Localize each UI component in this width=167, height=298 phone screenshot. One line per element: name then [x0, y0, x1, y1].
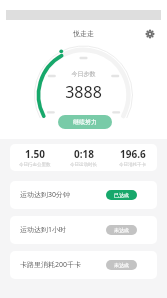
staticText: 运动达到30分钟 — [20, 190, 71, 200]
button[interactable]: Settings — [142, 26, 157, 41]
button[interactable]: 卡路里消耗200千卡 — [10, 251, 157, 279]
staticText: 未达成 — [114, 227, 129, 233]
staticText: 未达成 — [114, 262, 129, 268]
staticText: 悦走走 — [0, 29, 167, 38]
button[interactable]: 运动达到1小时 — [10, 216, 157, 244]
staticText: 今日步数 — [0, 70, 167, 78]
staticText: 196.6 — [120, 147, 146, 161]
staticText: 今日运动时长 — [70, 162, 97, 168]
staticText: 今日行走公里数 — [19, 162, 51, 168]
button[interactable]: 继续努力 — [58, 115, 112, 129]
staticText: 继续努力 — [73, 118, 97, 126]
staticText: 3888 — [0, 81, 167, 103]
staticText: 1.50 — [25, 147, 45, 161]
staticText: 今日消耗千卡 — [119, 162, 146, 168]
staticText: 卡路里消耗200千卡 — [20, 260, 82, 270]
staticText: 已达成 — [114, 192, 129, 198]
button[interactable]: 运动达到30分钟 — [10, 181, 157, 209]
staticText: 0:18 — [74, 147, 94, 161]
staticText: 运动达到1小时 — [20, 225, 67, 235]
